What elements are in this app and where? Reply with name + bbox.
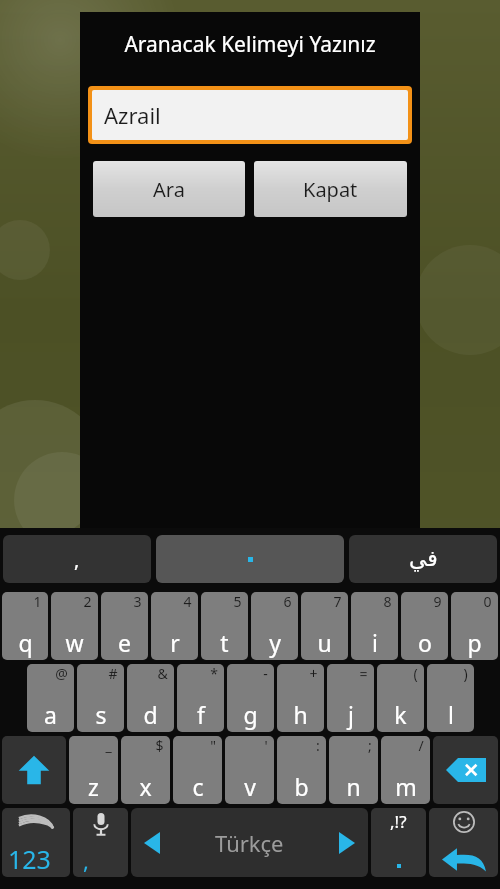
button[interactable]: 6 <box>251 592 298 660</box>
button[interactable]: * <box>177 664 224 732</box>
button[interactable]: : <box>277 736 326 804</box>
button[interactable]: Kapat <box>254 161 407 217</box>
staticText: KABIR ALEMİ <box>132 55 369 101</box>
button[interactable] <box>156 535 344 583</box>
staticText: + <box>309 664 318 683</box>
staticText: Kapat <box>303 176 358 203</box>
staticText: 8 <box>383 592 392 611</box>
staticText: b <box>294 771 309 802</box>
button[interactable]: ' <box>225 736 274 804</box>
staticText: y <box>269 627 281 658</box>
button[interactable]: # <box>77 664 124 732</box>
button[interactable]: = <box>327 664 374 732</box>
staticText: ,!? <box>390 810 407 833</box>
button[interactable]: Azrail <box>92 90 408 140</box>
staticText: p <box>467 627 482 658</box>
button[interactable]: Shift <box>2 736 66 804</box>
button[interactable]: Numbers and symbols <box>2 808 70 877</box>
button[interactable]: Ara <box>93 161 245 217</box>
staticText: v <box>244 771 256 802</box>
staticText: 2 <box>83 592 92 611</box>
staticText: c <box>192 771 204 802</box>
button[interactable]: ( <box>377 664 424 732</box>
staticText: k <box>394 699 407 730</box>
button[interactable]: & <box>127 664 174 732</box>
staticText: = <box>359 664 368 683</box>
button[interactable] <box>120 495 380 571</box>
staticText: 6 <box>283 592 292 611</box>
staticText: _ <box>105 736 112 755</box>
staticText: h <box>293 699 308 730</box>
staticText: Ara <box>153 176 185 203</box>
button[interactable]: Türkçe <box>131 808 368 877</box>
staticText: * <box>210 664 218 683</box>
staticText: 5 <box>233 592 242 611</box>
button[interactable]: - <box>227 664 274 732</box>
staticText: " <box>210 736 216 755</box>
staticText: # <box>108 664 118 683</box>
staticText: : <box>316 736 320 755</box>
button[interactable]: Backspace <box>433 736 498 804</box>
button[interactable]: 4 <box>151 592 198 660</box>
staticText: q <box>18 627 33 658</box>
staticText: / <box>418 736 424 755</box>
button[interactable]: , <box>3 535 151 583</box>
staticText: w <box>65 627 84 658</box>
button[interactable]: $ <box>121 736 170 804</box>
button[interactable]: 8 <box>351 592 398 660</box>
staticText: 9 <box>433 592 442 611</box>
button[interactable]: في <box>349 535 497 583</box>
staticText: g <box>243 699 258 730</box>
button[interactable]: + <box>277 664 324 732</box>
button[interactable]: 0 <box>451 592 498 660</box>
button[interactable]: 7 <box>301 592 348 660</box>
staticText: s <box>95 699 107 730</box>
staticText: 3 <box>133 592 142 611</box>
button[interactable]: / <box>381 736 430 804</box>
staticText: f <box>197 699 205 730</box>
button[interactable]: 2 <box>51 592 98 660</box>
staticText: - <box>263 664 268 683</box>
button[interactable]: 9 <box>401 592 448 660</box>
staticText: n <box>346 771 361 802</box>
staticText: r <box>170 627 180 658</box>
button[interactable]: 5 <box>201 592 248 660</box>
button[interactable]: " <box>173 736 222 804</box>
staticText: @ <box>55 664 68 683</box>
button[interactable]: @ <box>27 664 74 732</box>
button[interactable]: ,!? <box>371 808 426 877</box>
staticText: i <box>372 627 378 658</box>
staticText: Aranacak Kelimeyi Yazınız <box>80 30 420 59</box>
staticText: , <box>83 845 89 875</box>
staticText: $ <box>155 736 164 755</box>
staticText: ) <box>463 664 468 683</box>
staticText: 1 <box>33 592 42 611</box>
staticText: ( <box>413 664 418 683</box>
button[interactable]: ) <box>427 664 474 732</box>
staticText: 123 <box>8 842 51 876</box>
button[interactable]: 3 <box>101 592 148 660</box>
staticText: t <box>220 627 229 658</box>
staticText: m <box>395 771 417 802</box>
staticText: Azrail <box>104 100 161 130</box>
staticText: ; <box>368 736 372 755</box>
staticText: u <box>317 627 332 658</box>
staticText: 0 <box>483 592 492 611</box>
staticText: , <box>74 546 80 573</box>
button[interactable]: Voice input <box>73 808 128 877</box>
staticText: l <box>448 699 454 730</box>
button[interactable]: Enter <box>429 808 498 877</box>
button[interactable]: 1 <box>2 592 48 660</box>
staticText: & <box>157 664 168 683</box>
staticText: 4 <box>183 592 192 611</box>
button[interactable]: _ <box>69 736 118 804</box>
button[interactable]: ; <box>329 736 378 804</box>
staticText: x <box>139 771 152 802</box>
staticText: Türkçe <box>215 828 284 858</box>
staticText: o <box>418 627 432 658</box>
staticText: في <box>409 546 438 572</box>
